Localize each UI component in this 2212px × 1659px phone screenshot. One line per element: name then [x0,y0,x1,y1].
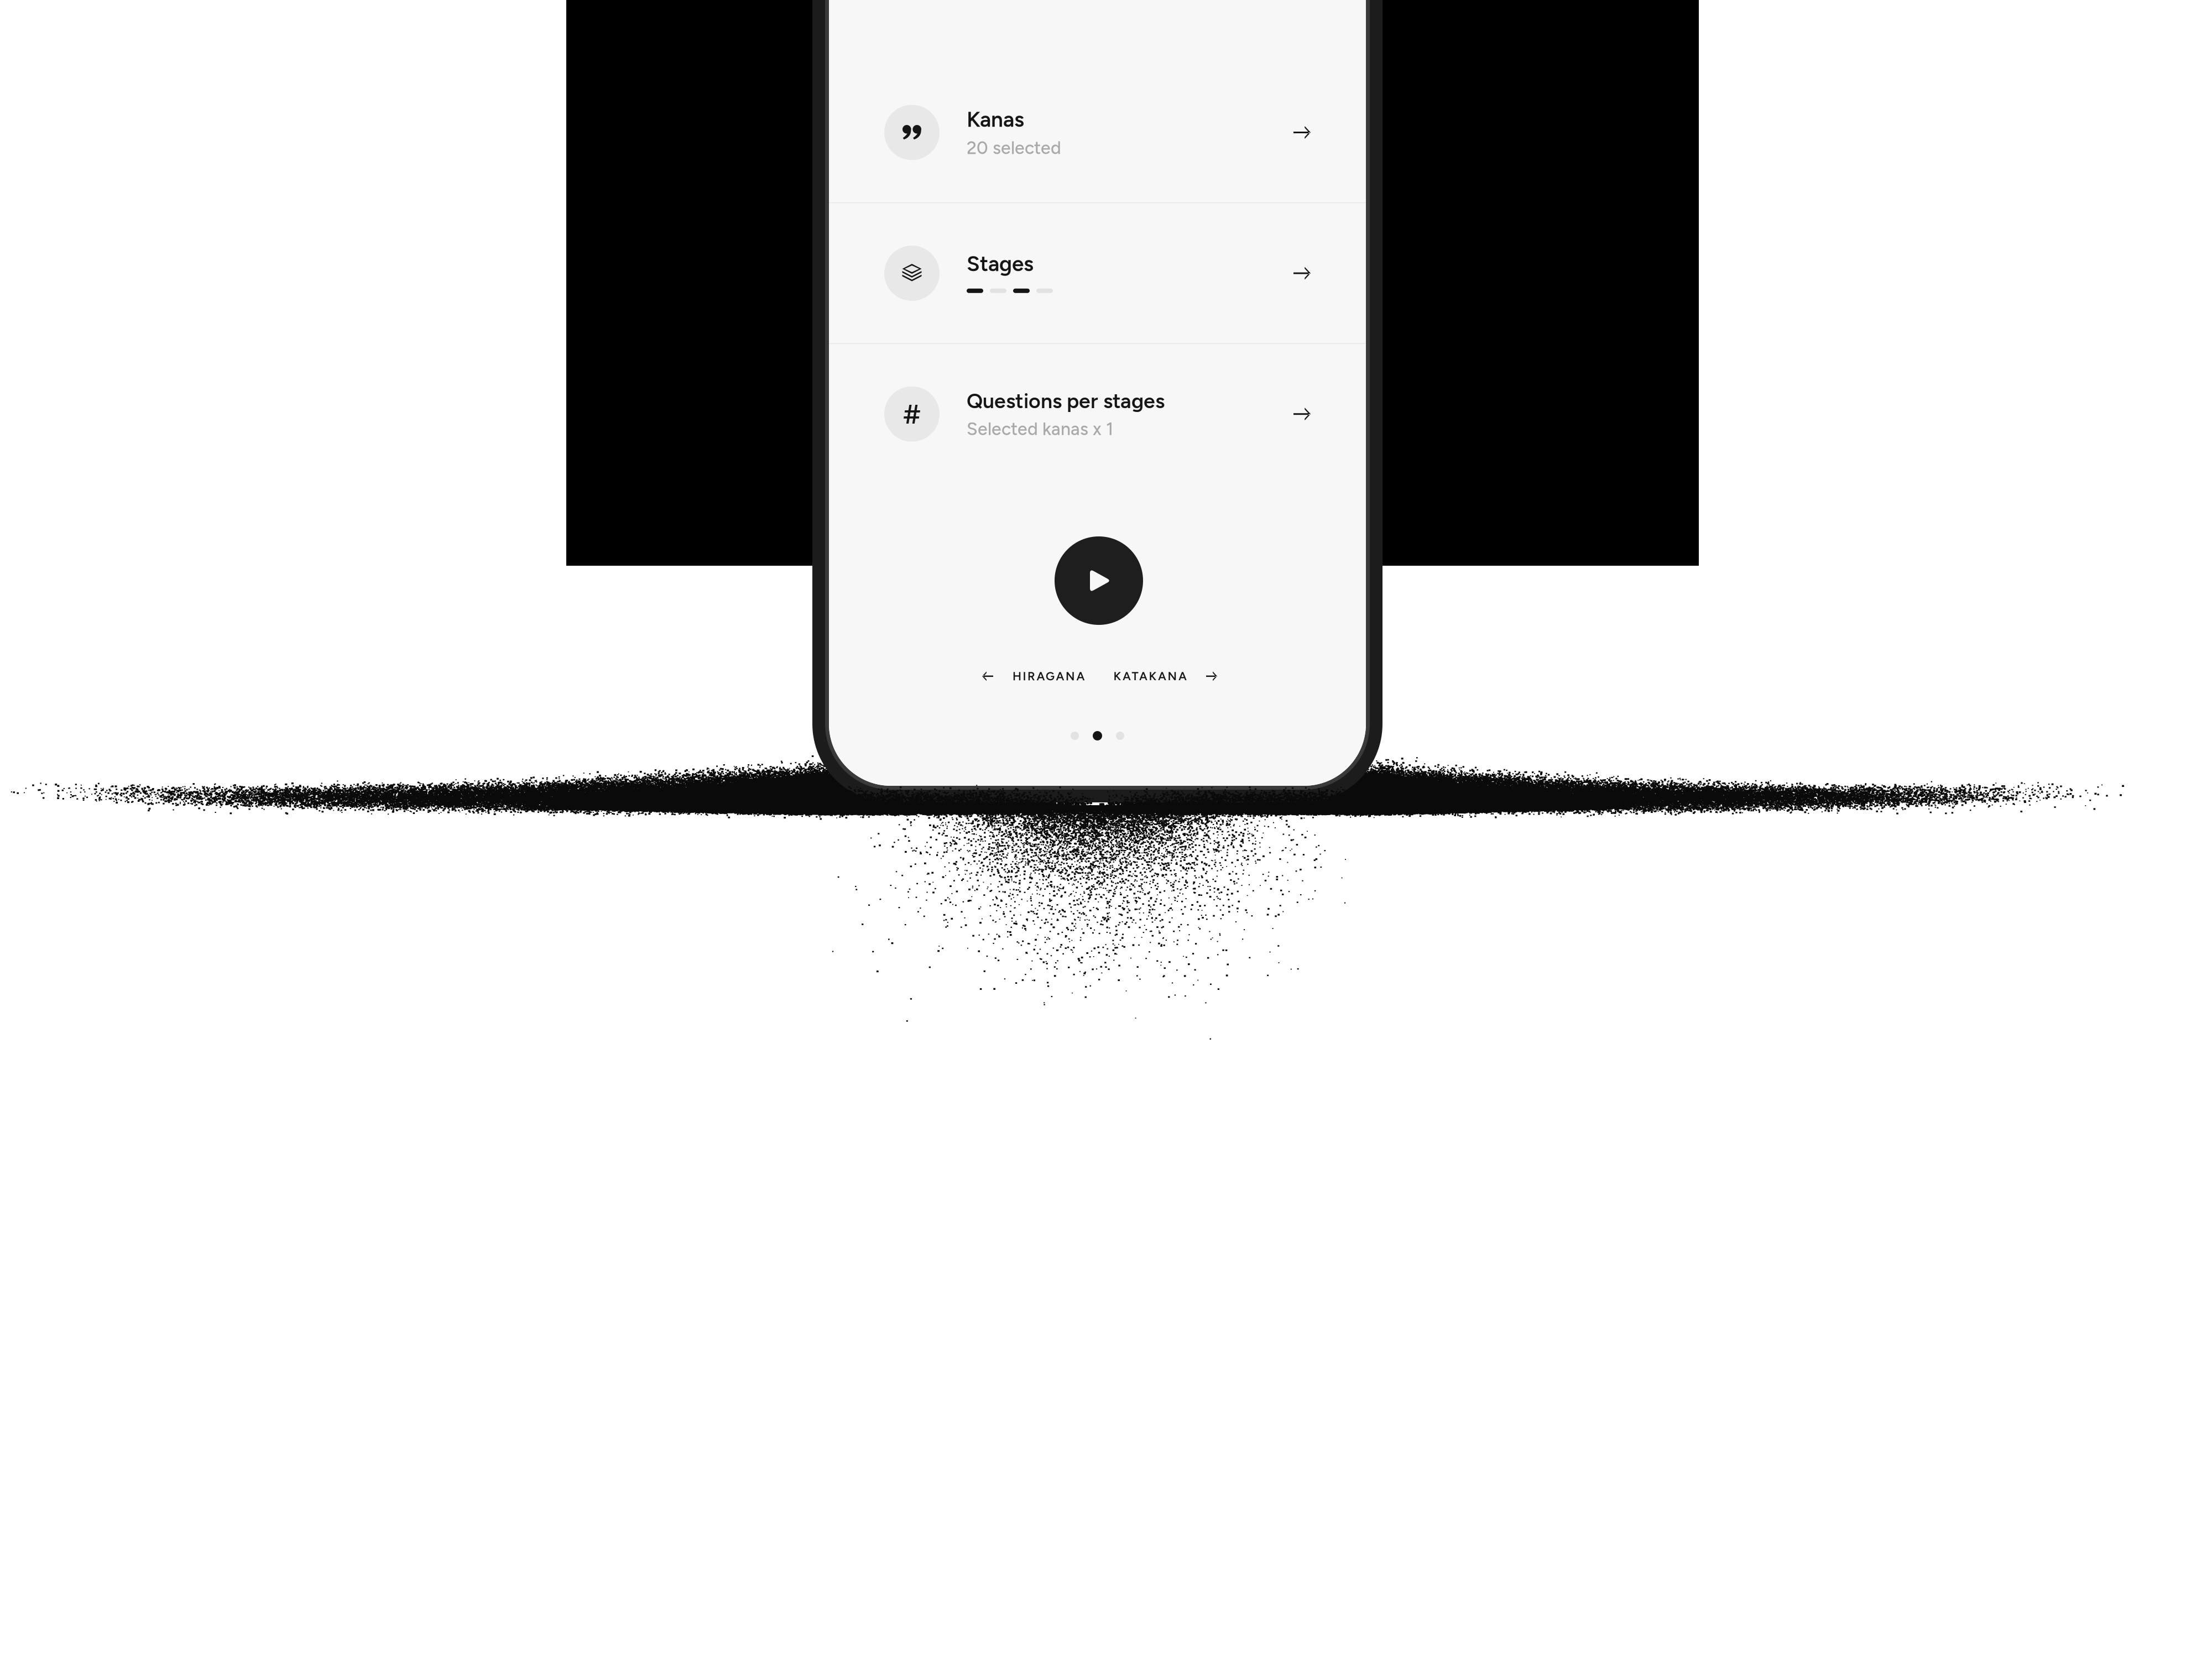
button[interactable]: Previous script [974,664,1001,689]
staticText: # [903,398,920,430]
staticText: Selected kanas x 1 [967,418,1113,440]
staticText: HIRAGANA [1013,669,1085,683]
staticText: 20 selected [967,137,1061,158]
staticText: Questions per stages [967,389,1165,413]
button[interactable]: HIRAGANA [1013,661,1085,691]
button[interactable]: KATAKANA [1113,661,1187,691]
staticText: KATAKANA [1113,669,1187,683]
button[interactable]: Kanas [829,62,1366,202]
button[interactable]: Start practice [1055,536,1143,625]
button[interactable]: Stages [829,203,1366,343]
button[interactable]: Next script [1198,664,1225,689]
button[interactable]: # [829,344,1366,484]
staticText: Kanas [967,107,1024,132]
staticText: Stages [967,251,1034,276]
